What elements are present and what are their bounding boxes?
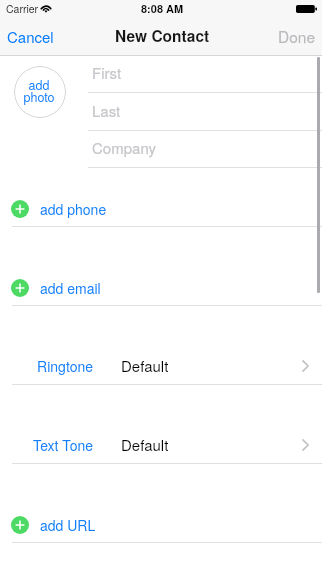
staticText: Ringtone	[37, 356, 93, 376]
staticText: Default	[121, 355, 169, 376]
button[interactable]: Cancel	[0, 20, 66, 56]
button[interactable]: Done	[266, 20, 322, 56]
staticText: add email	[40, 278, 101, 298]
other: Open Text Tone picker	[302, 439, 309, 451]
staticText: Last	[92, 100, 121, 121]
button[interactable]: Ringtone	[0, 348, 322, 385]
staticText: Default	[121, 434, 169, 455]
staticText: 8:08 AM	[141, 1, 184, 17]
staticText: First	[92, 62, 122, 83]
staticText: Done	[278, 25, 316, 47]
button[interactable]: add URL	[0, 506, 322, 543]
button[interactable]: add phone	[0, 190, 322, 227]
button[interactable]: First	[88, 56, 322, 93]
other: Open Ringtone picker	[302, 360, 309, 372]
staticText: Carrier	[6, 1, 39, 16]
button[interactable]: Add photo	[14, 66, 66, 118]
staticText: Cancel	[7, 26, 54, 47]
button[interactable]: Company	[88, 131, 322, 168]
button[interactable]: Last	[88, 93, 322, 131]
staticText: add phone	[40, 199, 107, 219]
staticText: Text Tone	[32, 435, 93, 455]
staticText: New Contact	[115, 25, 210, 47]
staticText: add photo	[23, 76, 55, 106]
button[interactable]: add email	[0, 269, 322, 306]
button[interactable]: Text Tone	[0, 427, 322, 464]
staticText: add URL	[40, 515, 96, 535]
staticText: Company	[92, 137, 156, 158]
